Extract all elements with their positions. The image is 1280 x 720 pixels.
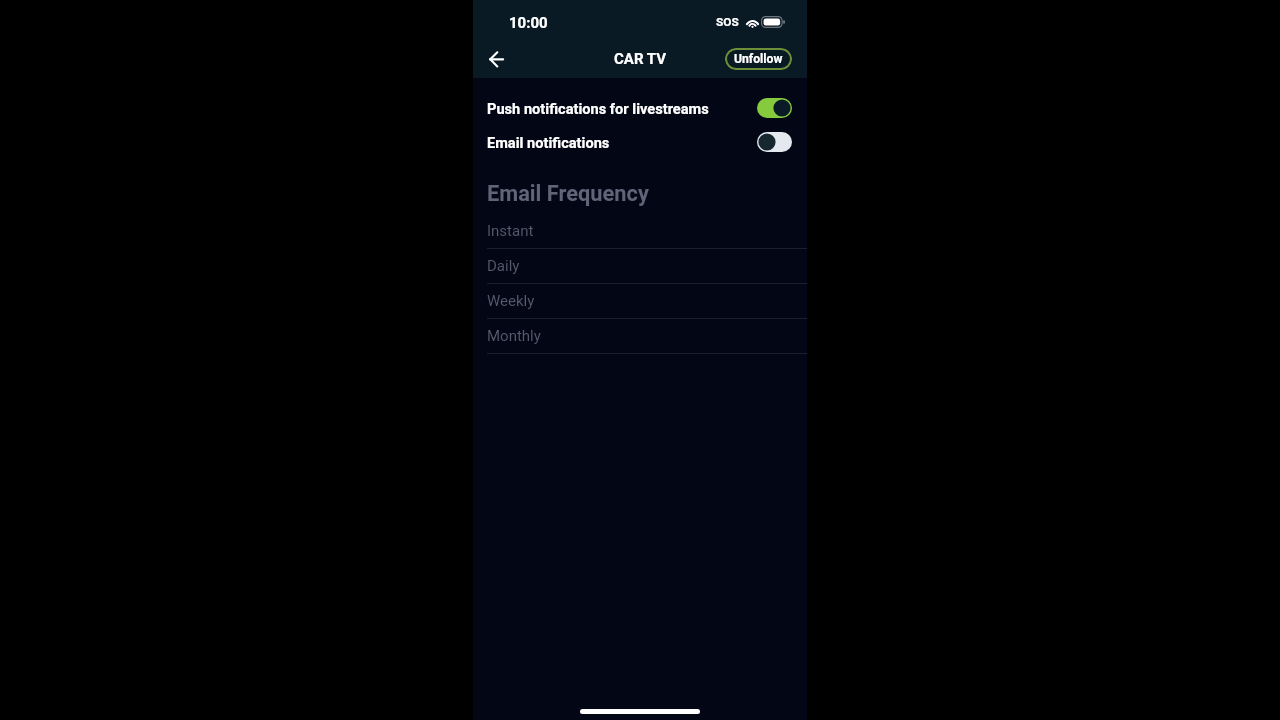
staticText: Email notifications — [487, 134, 610, 151]
staticText: Monthly — [487, 327, 541, 345]
button[interactable]: Monthly — [473, 319, 807, 354]
staticText: CAR TV — [614, 50, 666, 68]
button[interactable]: Daily — [473, 249, 807, 284]
button[interactable]: Weekly — [473, 284, 807, 319]
staticText: Email Frequency — [487, 181, 649, 207]
staticText: Weekly — [487, 292, 535, 310]
button[interactable]: Back — [482, 45, 510, 73]
staticText: SOS — [716, 15, 739, 29]
staticText: Unfollow — [734, 52, 783, 66]
button[interactable]: Instant — [473, 214, 807, 249]
staticText: 10:00 — [509, 14, 548, 32]
button[interactable]: Email notifications — [473, 128, 807, 156]
staticText: Instant — [487, 222, 534, 240]
button[interactable]: Push notifications for livestreams — [473, 94, 807, 122]
staticText: Push notifications for livestreams — [487, 100, 709, 117]
staticText: Daily — [487, 257, 520, 275]
button[interactable]: Unfollow — [725, 48, 792, 70]
